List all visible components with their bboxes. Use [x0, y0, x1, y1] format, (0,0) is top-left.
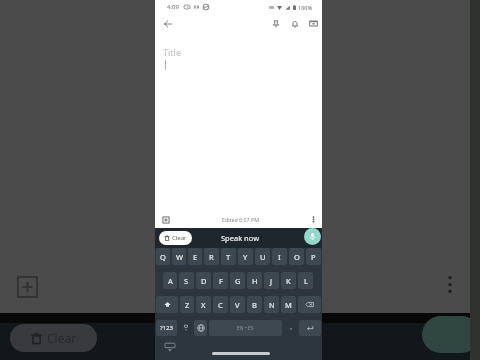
button[interactable]: More options: [307, 213, 320, 226]
button[interactable]: Comma: [179, 320, 192, 336]
button[interactable]: Pin: [268, 16, 283, 31]
staticText: F: [219, 276, 223, 286]
staticText: I: [278, 252, 281, 262]
button[interactable]: Z: [180, 296, 194, 313]
button[interactable]: R: [204, 248, 219, 265]
button[interactable]: K: [281, 272, 296, 289]
button[interactable]: S: [179, 272, 194, 289]
staticText: Title: [163, 46, 181, 58]
staticText: G: [235, 276, 241, 286]
staticText: Clear: [172, 234, 187, 242]
staticText: Y: [243, 252, 248, 262]
staticText: K: [286, 276, 291, 286]
staticText: V: [235, 300, 240, 310]
button[interactable]: Shift: [156, 296, 178, 313]
button[interactable]: V: [230, 296, 245, 313]
button[interactable]: T: [221, 248, 236, 265]
button[interactable]: Archive: [306, 16, 321, 31]
staticText: Speak now: [221, 233, 260, 243]
button[interactable]: E: [188, 248, 202, 265]
button[interactable]: P: [306, 248, 321, 265]
staticText: C: [218, 300, 223, 310]
button[interactable]: Hide keyboard: [163, 340, 176, 353]
button[interactable]: I: [272, 248, 287, 265]
staticText: EN • ES: [237, 325, 254, 332]
staticText: Edited 6:07 PM: [222, 216, 259, 223]
staticText: X: [201, 300, 206, 310]
button[interactable]: EN • ES: [209, 320, 282, 336]
staticText: H: [252, 276, 258, 286]
staticText: A: [168, 276, 173, 286]
staticText: P: [311, 252, 316, 262]
staticText: S: [184, 276, 189, 286]
button[interactable]: Back: [160, 16, 175, 31]
button[interactable]: B: [247, 296, 262, 313]
staticText: N: [269, 300, 275, 310]
staticText: B: [252, 300, 257, 310]
button[interactable]: Reminder: [287, 16, 302, 31]
staticText: 4:09: [167, 3, 179, 11]
button[interactable]: Enter: [299, 320, 321, 336]
button[interactable]: H: [247, 272, 262, 289]
staticText: Z: [185, 300, 190, 310]
button[interactable]: J: [264, 272, 279, 289]
staticText: U: [260, 252, 266, 262]
staticText: 100%: [298, 4, 313, 11]
staticText: Clear: [47, 330, 77, 346]
button[interactable]: Y: [238, 248, 253, 265]
button[interactable]: ?123: [156, 320, 177, 336]
button[interactable]: F: [213, 272, 228, 289]
staticText: M: [285, 300, 292, 310]
button[interactable]: W: [172, 248, 186, 265]
staticText: D: [201, 276, 207, 286]
button[interactable]: C: [213, 296, 228, 313]
staticText: J: [270, 276, 273, 286]
button[interactable]: Backspace: [298, 296, 321, 313]
button[interactable]: Microphone: [304, 228, 321, 245]
staticText: O: [294, 252, 300, 262]
button[interactable]: M: [281, 296, 296, 313]
staticText: ?123: [160, 324, 173, 332]
button[interactable]: X: [196, 296, 211, 313]
button[interactable]: Add: [159, 213, 172, 226]
button[interactable]: N: [264, 296, 279, 313]
button[interactable]: L: [298, 272, 313, 289]
button[interactable]: G: [230, 272, 245, 289]
button[interactable]: Language: [194, 320, 207, 336]
button[interactable]: A: [163, 272, 177, 289]
button[interactable]: Clear: [159, 231, 192, 245]
staticText: Q: [160, 252, 166, 262]
staticText: L: [304, 276, 308, 286]
button[interactable]: D: [196, 272, 211, 289]
staticText: E: [193, 252, 198, 262]
button[interactable]: Period: [284, 320, 297, 336]
button[interactable]: U: [255, 248, 270, 265]
button[interactable]: Q: [156, 248, 170, 265]
button[interactable]: O: [289, 248, 304, 265]
staticText: W: [176, 252, 183, 262]
staticText: R: [209, 252, 214, 262]
staticText: T: [226, 252, 231, 262]
